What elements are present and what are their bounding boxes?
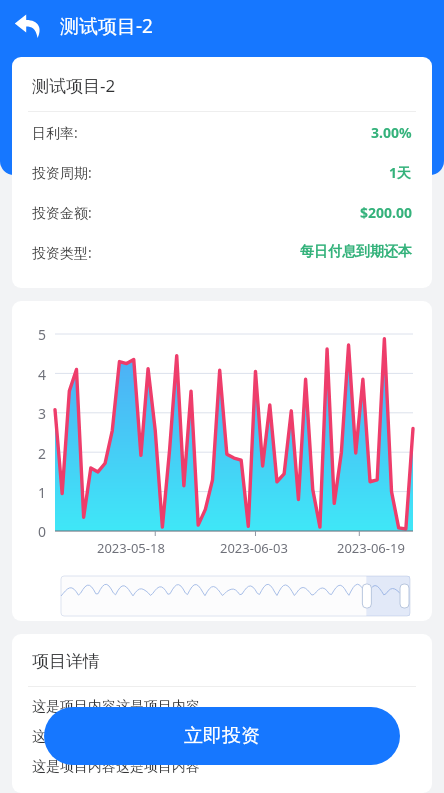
staticText: 2023-05-18 [97,539,165,557]
staticText: 5 [38,325,47,344]
staticText: 测试项目-2 [32,74,116,97]
staticText: 3 [38,404,47,423]
staticText: 投资类型: [32,243,92,262]
staticText: 项目详情 [32,651,100,672]
staticText: 4 [38,365,47,384]
button[interactable]: Back [6,4,50,48]
button[interactable]: 投资周期: [12,152,432,192]
staticText: 投资金额: [32,203,92,222]
staticText: 这是项目内容这是项目内容 [32,698,200,716]
staticText: 这是项目内容这是项目内容 [32,728,200,746]
staticText: 2023-06-19 [337,539,405,557]
button[interactable]: 投资类型: [12,232,432,272]
staticText: 测试项目-2 [60,13,153,39]
button[interactable]: 日利率: [12,112,432,152]
button[interactable]: 立即投资 [44,707,400,765]
staticText: $200.00 [360,203,412,222]
staticText: 投资周期: [32,163,92,182]
staticText: 0 [38,522,47,541]
staticText: 立即投资 [184,724,260,748]
staticText: 每日付息到期还本 [300,243,412,261]
staticText: 2023-06-03 [220,539,288,557]
staticText: 1天 [389,163,412,182]
staticText: 这是项目内容这是项目内容 [32,758,200,776]
staticText: 3.00% [371,123,412,142]
staticText: 2 [38,444,47,463]
staticText: 1 [38,483,47,502]
staticText: 日利率: [32,123,78,142]
button[interactable]: 投资金额: [12,192,432,232]
